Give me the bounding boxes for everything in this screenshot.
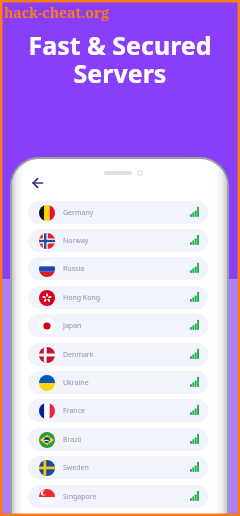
- staticText: France: [63, 406, 85, 416]
- staticText: Hong Kong: [63, 293, 101, 303]
- button[interactable]: Hong Kong: [28, 286, 208, 309]
- staticText: Japan: [63, 321, 82, 331]
- button[interactable]: Ukraine: [28, 371, 208, 394]
- button[interactable]: France: [28, 399, 208, 422]
- button[interactable]: Sweden: [28, 456, 208, 479]
- staticText: Brazil: [63, 435, 82, 445]
- button[interactable]: Back: [24, 170, 50, 196]
- staticText: Germany: [63, 208, 94, 218]
- staticText: Fast & Secured Servers: [0, 28, 240, 90]
- button[interactable]: Brazil: [28, 428, 208, 451]
- staticText: Norway: [63, 236, 89, 246]
- staticText: Singapore: [63, 492, 97, 502]
- staticText: Russia: [63, 264, 85, 274]
- button[interactable]: Russia: [28, 257, 208, 280]
- button[interactable]: Germany: [28, 201, 208, 224]
- staticText: hack-cheat.org: [4, 3, 110, 22]
- button[interactable]: Japan: [28, 314, 208, 337]
- button[interactable]: Norway: [28, 229, 208, 252]
- staticText: Ukraine: [63, 378, 89, 388]
- staticText: Sweden: [63, 463, 89, 473]
- button[interactable]: Singapore: [28, 485, 208, 508]
- button[interactable]: Denmark: [28, 343, 208, 366]
- staticText: Denmark: [63, 350, 94, 360]
